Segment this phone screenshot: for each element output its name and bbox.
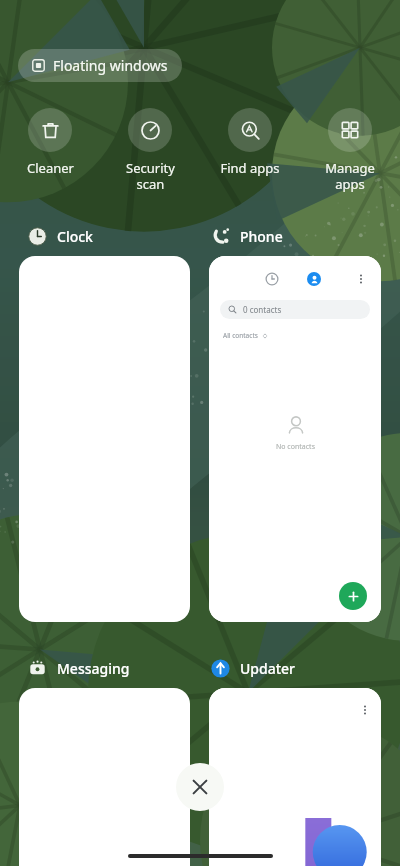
staticText: All contacts xyxy=(223,331,258,340)
button[interactable]: Cleaner xyxy=(0,108,100,177)
staticText: Updater xyxy=(240,659,296,678)
button[interactable]: Close all xyxy=(176,763,224,811)
staticText: Messaging xyxy=(57,659,130,678)
button[interactable]: Security scan xyxy=(100,108,200,192)
button[interactable] xyxy=(19,256,190,622)
button[interactable]: Messaging xyxy=(27,658,130,678)
button[interactable]: 0 contacts xyxy=(220,300,370,319)
button[interactable]: Floating windows xyxy=(18,49,182,82)
staticText: Cleaner xyxy=(27,159,74,177)
staticText: Security scan xyxy=(126,159,175,192)
staticText: 0 contacts xyxy=(243,304,282,315)
button[interactable]: Updater xyxy=(210,658,296,678)
staticText: Clock xyxy=(57,227,93,246)
staticText: Manage apps xyxy=(325,159,375,192)
staticText: No contacts xyxy=(276,442,315,452)
button[interactable] xyxy=(209,688,381,866)
button[interactable]: Clock xyxy=(27,226,93,246)
button[interactable] xyxy=(19,688,190,866)
button[interactable]: Find apps xyxy=(200,108,300,177)
staticText: Phone xyxy=(240,227,283,246)
staticText: Floating windows xyxy=(53,56,168,75)
staticText: Find apps xyxy=(220,159,280,177)
button[interactable]: Phone xyxy=(210,226,283,246)
button[interactable]: Manage apps xyxy=(300,108,400,192)
button[interactable]: Add contact xyxy=(339,582,367,610)
button[interactable]: 0 contacts xyxy=(209,256,381,622)
